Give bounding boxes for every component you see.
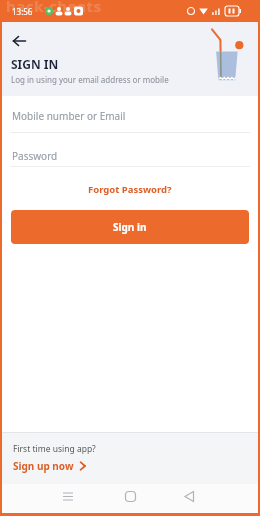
staticText: Log in using your email address or mobil… (11, 74, 169, 85)
staticText: Password (12, 149, 58, 163)
button[interactable]: Mobile number or Email (10, 100, 250, 133)
button[interactable] (6, 29, 34, 51)
button[interactable]: Password (10, 140, 250, 167)
button[interactable]: Sign up now (13, 459, 88, 473)
staticText: Sign in (113, 220, 147, 234)
staticText: First time using app? (13, 443, 96, 455)
staticText: hack-cheats (6, 0, 102, 16)
button[interactable]: Forgot Password? (88, 183, 172, 196)
staticText: SIGN IN (11, 56, 59, 72)
button[interactable] (48, 484, 88, 514)
button[interactable] (170, 484, 210, 514)
staticText: Forgot Password? (88, 183, 172, 196)
staticText: Mobile number or Email (12, 109, 126, 123)
button[interactable] (110, 484, 150, 514)
button[interactable]: Sign in (11, 210, 249, 244)
staticText: 13:56 (12, 6, 33, 17)
staticText: Sign up now (13, 459, 74, 473)
